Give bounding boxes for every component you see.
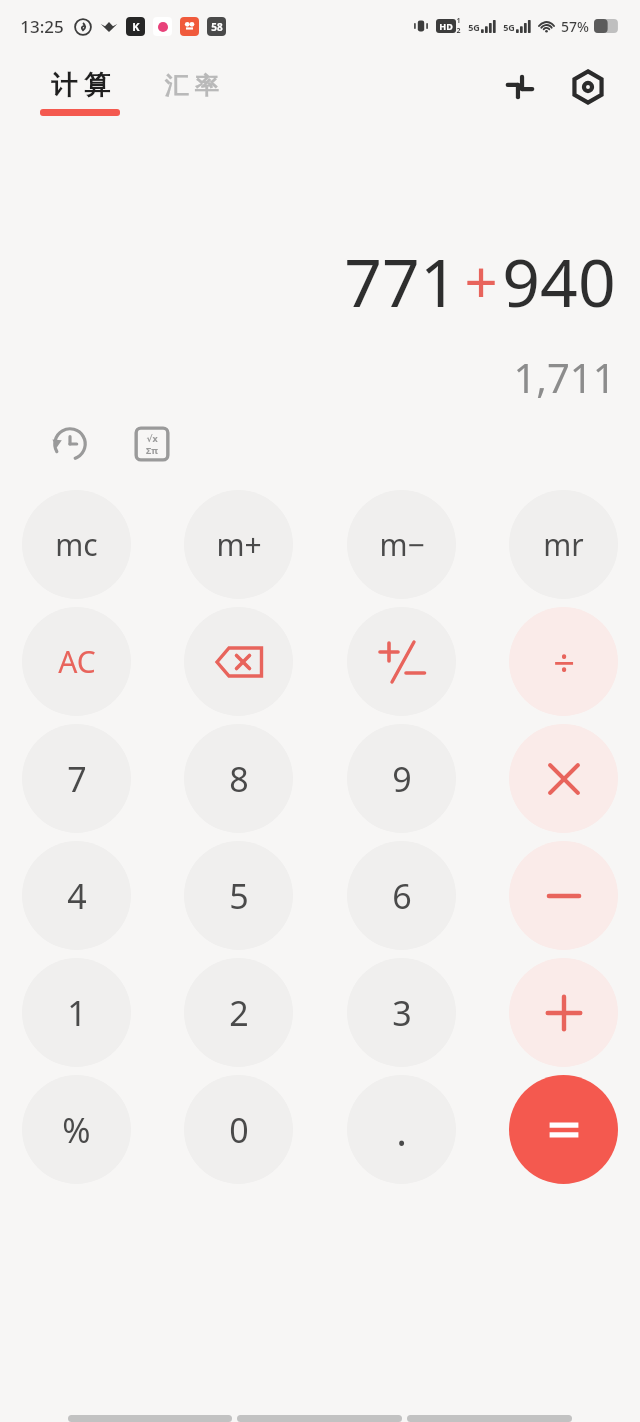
- button[interactable]: mr: [509, 490, 618, 599]
- button[interactable]: 1: [22, 958, 131, 1067]
- button[interactable]: 5: [184, 841, 293, 950]
- button[interactable]: AC: [22, 607, 131, 716]
- button[interactable]: [237, 1415, 402, 1422]
- staticText: 1,711: [513, 350, 616, 404]
- button[interactable]: 0: [184, 1075, 293, 1184]
- staticText: 4: [67, 873, 87, 919]
- button[interactable]: 2: [184, 958, 293, 1067]
- staticText: ÷: [553, 636, 575, 688]
- staticText: %: [62, 1107, 91, 1153]
- staticText: 5: [229, 873, 249, 919]
- button[interactable]: Settings: [564, 63, 612, 111]
- staticText: 汇 率: [164, 68, 219, 101]
- staticText: 2: [229, 990, 249, 1036]
- button[interactable]: 计 算: [40, 66, 120, 116]
- staticText: 771: [344, 236, 458, 326]
- button[interactable]: 7: [22, 724, 131, 833]
- staticText: 2: [456, 26, 461, 36]
- button[interactable]: Equals: [509, 1075, 618, 1184]
- button[interactable]: Backspace: [184, 607, 293, 716]
- button[interactable]: 4: [22, 841, 131, 950]
- staticText: 0: [229, 1107, 249, 1153]
- staticText: 3: [392, 990, 412, 1036]
- staticText: HD: [439, 20, 453, 32]
- button[interactable]: [407, 1415, 572, 1422]
- button[interactable]: %: [22, 1075, 131, 1184]
- staticText: 13:25: [20, 15, 64, 38]
- button[interactable]: 汇 率: [164, 68, 219, 115]
- button[interactable]: Add: [509, 958, 618, 1067]
- staticText: 9: [392, 756, 412, 802]
- button[interactable]: mc: [22, 490, 131, 599]
- button[interactable]: 3: [347, 958, 456, 1067]
- button[interactable]: .: [347, 1075, 456, 1184]
- staticText: 57%: [561, 17, 589, 36]
- button[interactable]: m+: [184, 490, 293, 599]
- button[interactable]: 9: [347, 724, 456, 833]
- staticText: 7: [67, 756, 87, 802]
- staticText: .: [396, 1103, 407, 1157]
- staticText: m+: [216, 524, 262, 565]
- staticText: m−: [379, 524, 425, 565]
- button[interactable]: m−: [347, 490, 456, 599]
- staticText: √x: [146, 432, 158, 444]
- button[interactable]: Subtract: [509, 841, 618, 950]
- staticText: 计 算: [51, 66, 110, 102]
- staticText: mr: [543, 524, 584, 565]
- button[interactable]: Scientific mode: [126, 418, 178, 470]
- staticText: AC: [58, 641, 96, 682]
- staticText: 5G: [503, 21, 515, 33]
- staticText: 6: [392, 873, 412, 919]
- staticText: K: [132, 19, 140, 34]
- staticText: +: [464, 242, 498, 321]
- staticText: 940: [502, 236, 616, 326]
- button[interactable]: ÷: [509, 607, 618, 716]
- button[interactable]: 6: [347, 841, 456, 950]
- staticText: 8: [229, 756, 249, 802]
- staticText: 5G: [468, 21, 480, 33]
- staticText: 1: [67, 990, 87, 1036]
- button[interactable]: [68, 1415, 232, 1422]
- button[interactable]: History: [44, 418, 96, 470]
- button[interactable]: Multiply: [509, 724, 618, 833]
- button[interactable]: Plus minus: [347, 607, 456, 716]
- staticText: 58: [211, 20, 223, 34]
- button[interactable]: Unit converter: [496, 63, 544, 111]
- staticText: Σπ: [146, 444, 158, 456]
- button[interactable]: 8: [184, 724, 293, 833]
- staticText: mc: [55, 524, 98, 565]
- staticText: 1: [456, 16, 461, 26]
